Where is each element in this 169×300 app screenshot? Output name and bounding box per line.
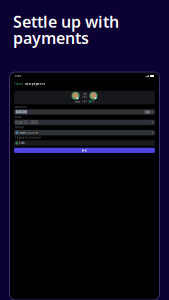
staticText: Payment method — [15, 136, 41, 139]
staticText: $20.00 — [16, 110, 27, 114]
staticText: paid — [81, 100, 87, 103]
button[interactable]: Jul 21, 2025 — [14, 120, 155, 125]
staticText: payments — [13, 27, 89, 48]
staticText: paid — [81, 95, 87, 99]
staticText: New payment — [25, 82, 45, 86]
staticText: 9:41 — [15, 74, 22, 78]
staticText: Cash — [19, 141, 25, 145]
staticText: Cancel — [14, 82, 23, 86]
button[interactable]: Save — [14, 148, 155, 153]
staticText: Jul 21, 2025 — [19, 121, 38, 124]
staticText: USD — [145, 110, 150, 114]
staticText: Tyler — [88, 100, 94, 103]
staticText: Date — [15, 115, 22, 119]
staticText: Group — [15, 126, 24, 129]
button[interactable]: Cancel — [14, 82, 23, 86]
staticText: Miami 2025 — [19, 131, 35, 134]
button[interactable]: $20.00 — [14, 109, 155, 115]
button[interactable]: Miami 2025 — [14, 130, 155, 135]
button[interactable]: Cash — [14, 140, 155, 146]
staticText: Settle up with — [13, 11, 119, 32]
staticText: Amount — [15, 105, 27, 108]
staticText: Steve — [75, 100, 81, 103]
staticText: Save — [81, 149, 87, 152]
